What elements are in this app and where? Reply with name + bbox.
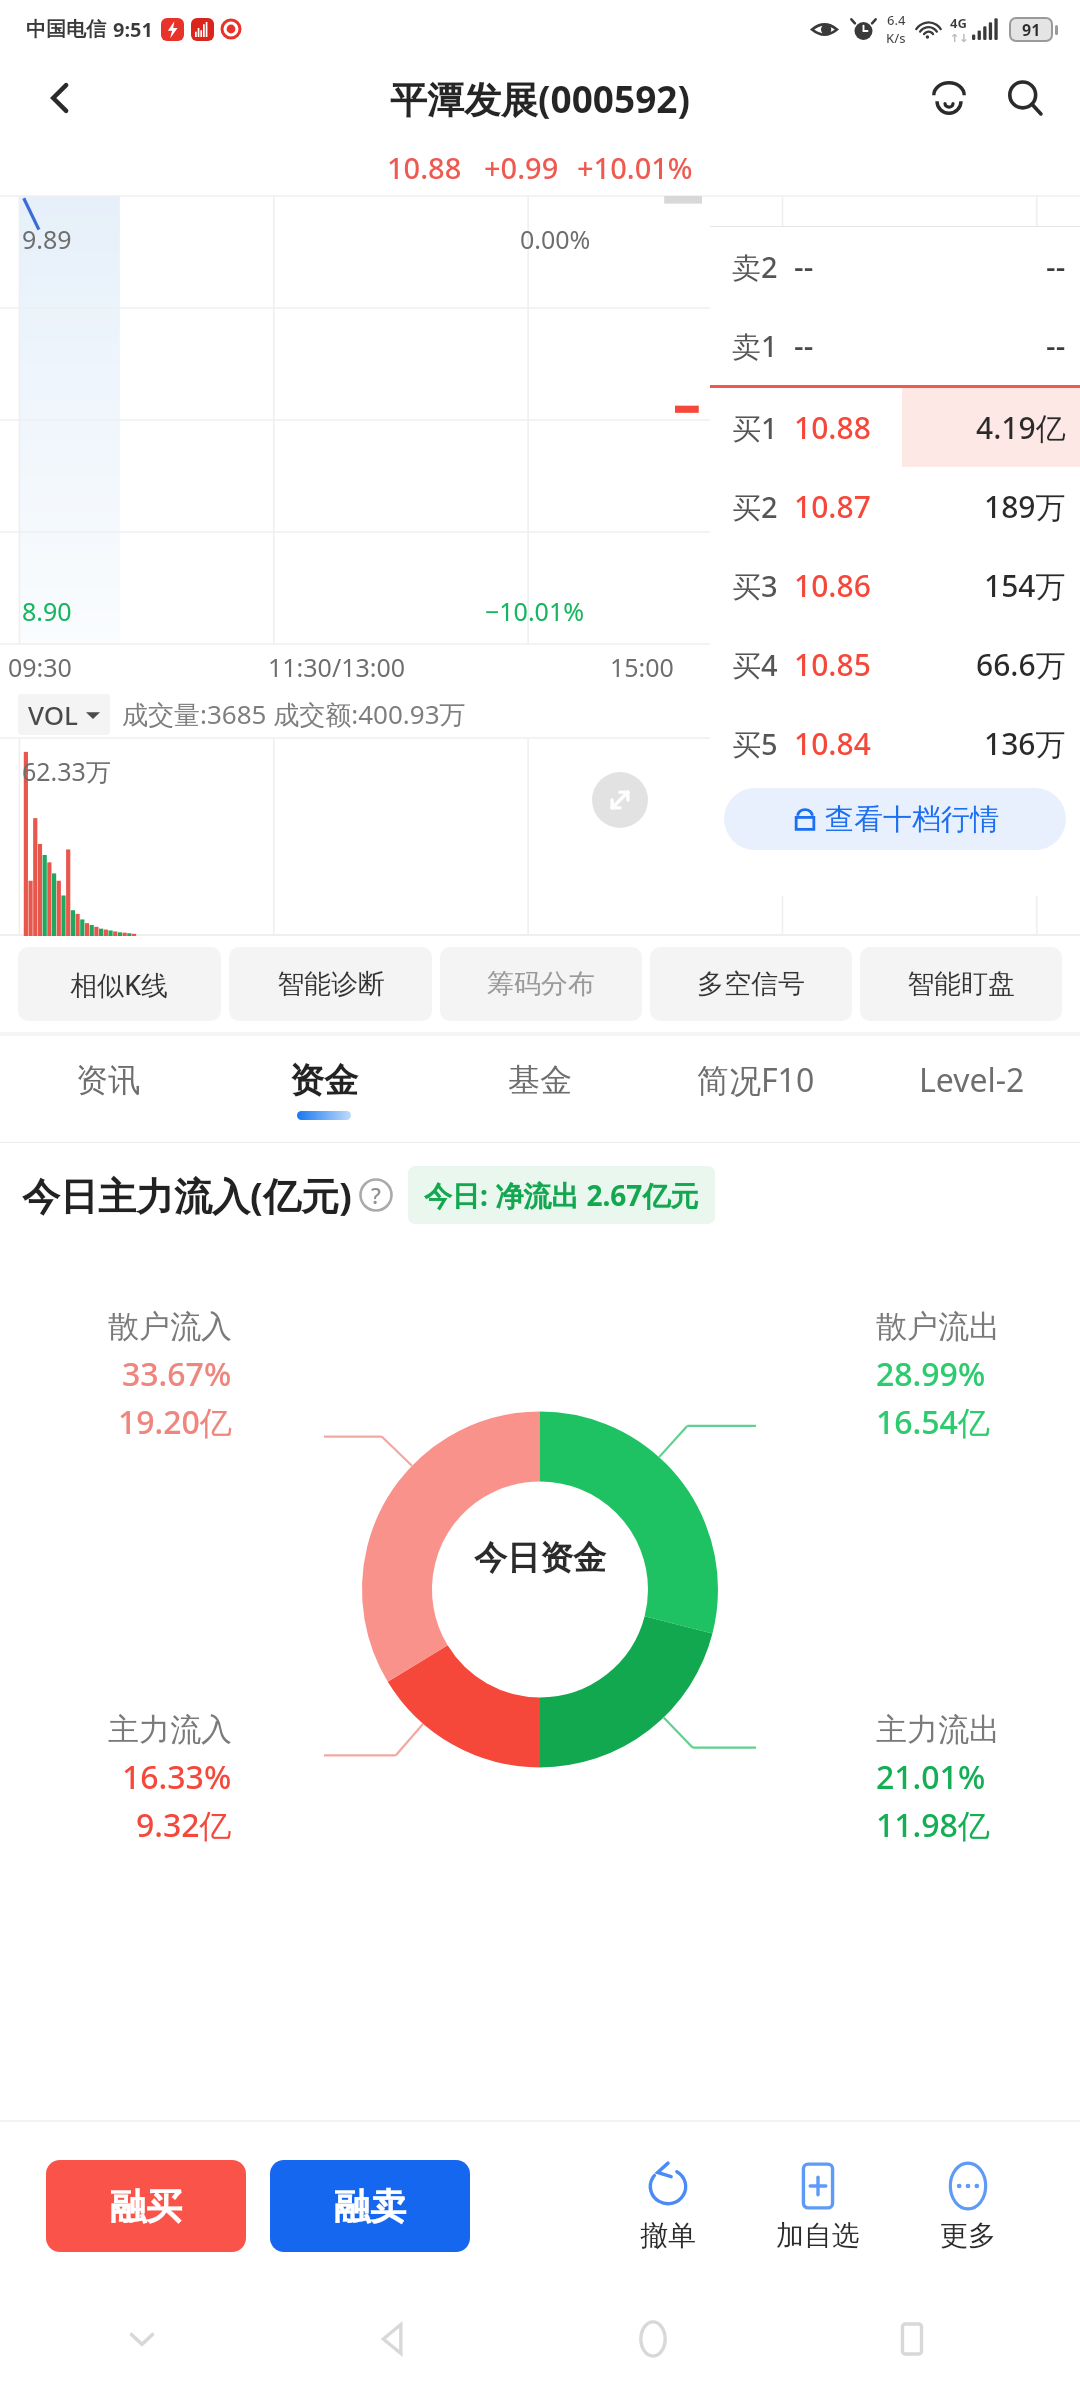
button[interactable]: Fullscreen chart [592,772,648,828]
button[interactable]: 融卖 [270,2160,470,2252]
staticText: −10.01% [485,594,584,628]
staticText: 主力流出 [876,1710,1000,1749]
button[interactable]: Back [356,2301,432,2377]
staticText: 11.98亿 [876,1803,990,1847]
staticText: 10.88 [794,407,871,448]
staticText: 散户流入 [108,1307,232,1346]
staticText: 9.32亿 [136,1803,232,1847]
staticText: Level-2 [919,1058,1025,1102]
staticText: 189万 [984,486,1066,527]
button[interactable]: Back [34,72,86,124]
button[interactable]: 卖2 [710,227,1080,306]
staticText: 买3 [732,566,778,606]
staticText: 10.88 [387,148,462,187]
staticText: 买5 [732,724,778,764]
staticText: 散户流出 [876,1307,1000,1346]
staticText: 62.33万 [22,754,111,788]
button[interactable]: Recents [874,2301,950,2377]
button[interactable]: 相似K线 [18,947,221,1021]
button[interactable]: 买3 [710,546,1080,625]
staticText: 91 [1022,19,1041,40]
staticText: 19.20亿 [118,1400,232,1444]
staticText: 融买 [110,2184,182,2229]
staticText: 卖2 [732,247,778,287]
staticText: 资金 [290,1059,358,1102]
staticText: 中国电信 [26,17,106,42]
staticText: 买1 [732,408,778,448]
staticText: -- [1046,325,1066,366]
button[interactable]: 智能诊断 [229,947,432,1021]
button[interactable]: 基金 [432,1036,648,1142]
staticText: 8.90 [22,594,72,628]
staticText: 卖1 [732,326,778,366]
staticText: 16.33% [122,1755,232,1799]
button[interactable]: 买1 [710,388,1080,467]
staticText: 买4 [732,645,778,685]
staticText: 10.86 [794,565,871,606]
staticText: 9:51 [113,16,153,43]
staticText: 0.00% [520,222,591,256]
staticText: 智能盯盘 [907,967,1015,1001]
button[interactable]: 查看十档行情 [724,788,1066,850]
staticText: 简况F10 [697,1058,815,1102]
button[interactable]: Assistant [920,69,978,127]
staticText: 资讯 [76,1060,140,1100]
staticText: 154万 [984,565,1066,606]
staticText: 4.19亿 [976,407,1066,448]
staticText: 更多 [940,2218,996,2253]
staticText: 15:00 [610,650,674,684]
staticText: 21.01% [876,1755,986,1799]
staticText: 多空信号 [697,967,805,1001]
staticText: 查看十档行情 [825,801,999,838]
button[interactable]: 融买 [46,2160,246,2252]
staticText: 撤单 [640,2218,696,2253]
staticText: 基金 [508,1060,572,1100]
staticText: 融卖 [334,2184,406,2229]
button[interactable]: 撤单 [602,2160,734,2253]
staticText: 4G [950,14,967,32]
staticText: K/s [886,29,906,47]
staticText: 买2 [732,487,778,527]
button[interactable]: 多空信号 [650,947,852,1021]
staticText: 10.84 [794,723,871,764]
staticText: 智能诊断 [277,967,385,1001]
staticText: -- [794,246,814,287]
staticText: 今日主力流入(亿元) [22,1169,352,1221]
button[interactable]: 筹码分布 [440,947,642,1021]
staticText: -- [794,325,814,366]
staticText: 11:30/13:00 [268,650,406,684]
staticText: +0.99 [484,148,559,187]
button[interactable]: 简况F10 [648,1036,864,1142]
button[interactable]: 加自选 [752,2160,884,2253]
staticText: 6.4 [887,11,906,29]
staticText: 28.99% [876,1352,986,1396]
button[interactable]: VOL [18,694,110,735]
staticText: +10.01% [577,148,693,187]
button[interactable]: Search [996,69,1054,127]
staticText: 136万 [984,723,1066,764]
button[interactable]: Hide keyboard [110,2307,174,2371]
staticText: 主力流入 [108,1710,232,1749]
button[interactable]: 买2 [710,467,1080,546]
button[interactable]: Help [358,1177,394,1213]
button[interactable]: Home [615,2301,691,2377]
staticText: 10.87 [794,486,871,527]
staticText: 今日资金 [474,1537,606,1579]
staticText: ↑↓ [950,32,969,45]
staticText: 平潭发展(000592) [390,73,691,124]
button[interactable]: 资金 [216,1036,432,1142]
button[interactable]: 资讯 [0,1036,216,1142]
button[interactable]: 更多 [902,2160,1034,2253]
staticText: 09:30 [8,650,72,684]
staticText: ? [371,1180,381,1210]
button[interactable]: Level-2 [864,1036,1080,1142]
staticText: 筹码分布 [487,967,595,1001]
staticText: 33.67% [122,1352,232,1396]
button[interactable]: 买4 [710,625,1080,704]
button[interactable]: 卖1 [710,306,1080,385]
staticText: 10.85 [794,644,871,685]
button[interactable]: 智能盯盘 [860,947,1062,1021]
button[interactable]: 买5 [710,704,1080,783]
staticText: 成交量:3685 成交额:400.93万 [122,696,466,732]
staticText: 16.54亿 [876,1400,990,1444]
